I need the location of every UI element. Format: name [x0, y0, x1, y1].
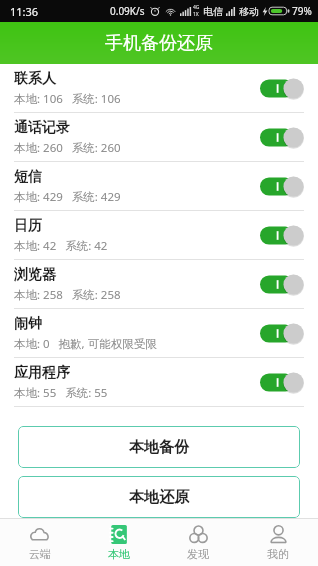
staticText: 4G: [193, 4, 200, 11]
staticText: 0.09K/s: [110, 4, 145, 18]
staticText: 本地: 55 系统: 55: [14, 385, 108, 401]
button[interactable]: 联系人: [0, 64, 318, 112]
button[interactable]: 通话记录: [0, 113, 318, 161]
staticText: 本地: 0 抱歉, 可能权限受限: [14, 336, 157, 352]
staticText: 手机备份还原: [105, 32, 213, 55]
button[interactable]: 开关: [260, 176, 304, 197]
staticText: 本地备份: [129, 438, 189, 457]
staticText: 发现: [187, 547, 209, 561]
staticText: 日历: [14, 217, 42, 235]
button[interactable]: 我的: [238, 519, 318, 566]
button[interactable]: 本地备份: [18, 426, 300, 468]
button[interactable]: 云端: [0, 519, 79, 566]
button[interactable]: 闹钟: [0, 309, 318, 357]
staticText: 本地: 429 系统: 429: [14, 189, 121, 205]
staticText: 11:36: [10, 4, 39, 19]
staticText: 本地: 42 系统: 42: [14, 238, 108, 254]
staticText: 闹钟: [14, 315, 42, 333]
button[interactable]: 短信: [0, 162, 318, 210]
button[interactable]: 开关: [260, 372, 304, 393]
staticText: 本地: 258 系统: 258: [14, 287, 121, 303]
staticText: 浏览器: [14, 266, 56, 284]
staticText: 本地: [108, 547, 130, 561]
button[interactable]: 发现: [158, 519, 238, 566]
staticText: 移动: [239, 5, 259, 18]
staticText: 云端: [29, 547, 51, 561]
button[interactable]: 日历: [0, 211, 318, 259]
staticText: 电信: [203, 5, 223, 18]
button[interactable]: 开关: [260, 78, 304, 99]
staticText: 应用程序: [14, 364, 70, 382]
button[interactable]: 开关: [260, 225, 304, 246]
staticText: 短信: [14, 168, 42, 186]
staticText: 联系人: [14, 70, 56, 88]
staticText: 我的: [267, 547, 289, 561]
button[interactable]: 开关: [260, 323, 304, 344]
staticText: 通话记录: [14, 119, 70, 137]
button[interactable]: 浏览器: [0, 260, 318, 308]
staticText: 本地: 106 系统: 106: [14, 91, 121, 107]
staticText: 本地还原: [129, 488, 189, 507]
button[interactable]: 本地还原: [18, 476, 300, 518]
button[interactable]: 开关: [260, 274, 304, 295]
staticText: 79%: [292, 4, 312, 18]
staticText: 1X: [193, 11, 199, 18]
button[interactable]: 本地: [79, 519, 158, 566]
button[interactable]: 开关: [260, 127, 304, 148]
staticText: 本地: 260 系统: 260: [14, 140, 121, 156]
button[interactable]: 应用程序: [0, 358, 318, 406]
